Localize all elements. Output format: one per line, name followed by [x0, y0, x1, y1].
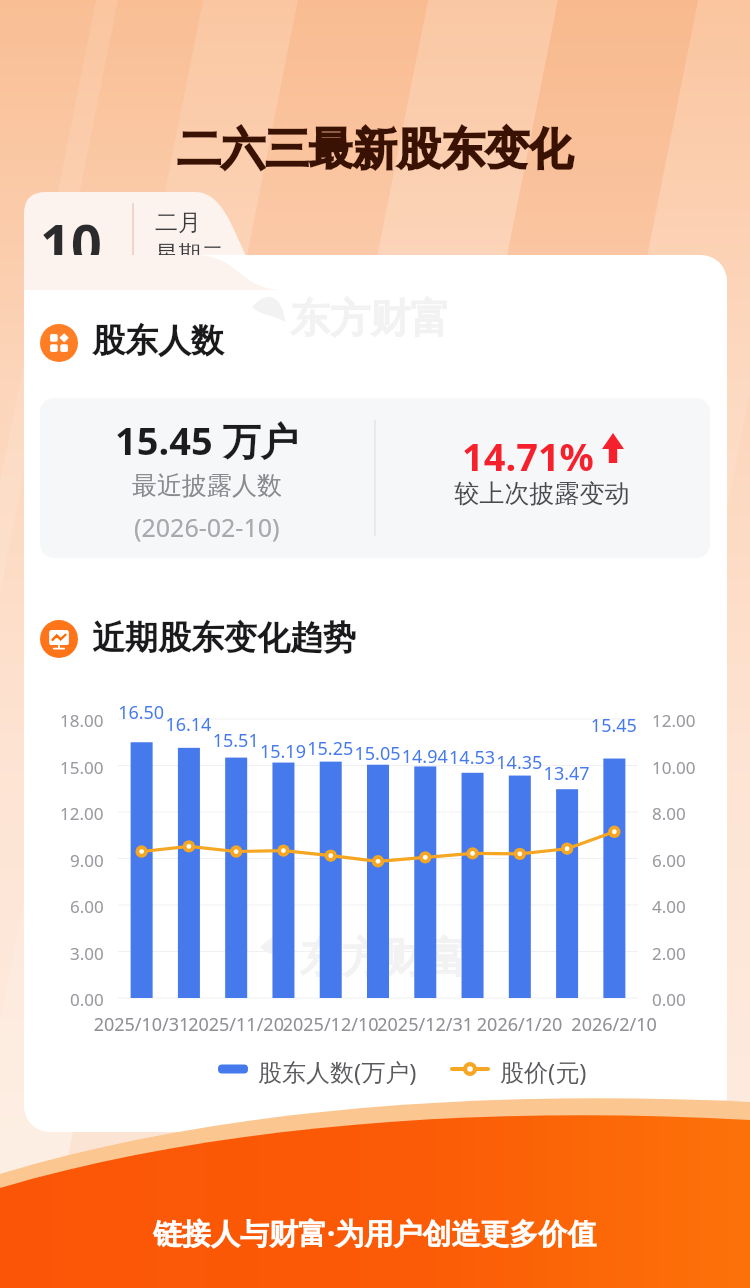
button[interactable]: 二六三最新股东变化	[0, 0, 750, 1288]
